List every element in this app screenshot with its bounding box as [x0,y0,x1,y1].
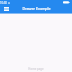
staticText: Home page [28,67,44,71]
button[interactable]: Open navigation drawer [0,4,13,13]
staticText: 10:30 [0,1,7,5]
staticText: Drawer Example [22,6,51,11]
